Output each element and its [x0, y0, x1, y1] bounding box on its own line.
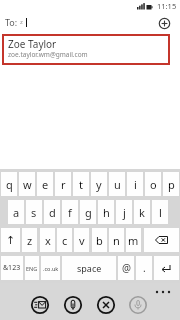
staticText: .co.uk: [43, 265, 59, 272]
button[interactable]: .co.uk: [41, 256, 60, 280]
staticText: o: [150, 177, 157, 192]
button[interactable]: space: [62, 256, 116, 280]
button[interactable]: v: [74, 228, 89, 252]
staticText: h: [103, 205, 110, 220]
button[interactable]: g: [80, 200, 96, 224]
staticText: n: [113, 233, 120, 248]
staticText: d: [49, 205, 56, 220]
staticText: z: [27, 233, 33, 248]
button[interactable]: w: [19, 172, 35, 196]
staticText: ENG: [26, 265, 38, 272]
button[interactable]: &123: [1, 256, 23, 280]
button[interactable]: m: [126, 228, 141, 252]
button[interactable]: p: [163, 172, 179, 196]
button[interactable]: [129, 296, 147, 314]
button[interactable]: [64, 296, 82, 314]
staticText: s: [31, 205, 37, 220]
button[interactable]: b: [92, 228, 107, 252]
button[interactable]: .: [136, 256, 152, 280]
staticText: i: [134, 177, 137, 192]
staticText: x: [45, 233, 51, 248]
button[interactable]: To:: [5, 15, 23, 29]
staticText: @: [122, 261, 131, 275]
button[interactable]: [31, 296, 49, 314]
staticText: j: [123, 205, 126, 220]
staticText: q: [6, 177, 13, 192]
staticText: f: [68, 205, 72, 220]
button[interactable]: ↑: [1, 228, 20, 252]
button[interactable]: [144, 228, 179, 252]
button[interactable]: q: [1, 172, 17, 196]
button[interactable]: @: [118, 256, 134, 280]
button[interactable]: u: [109, 172, 125, 196]
staticText: r: [61, 177, 66, 192]
button[interactable]: n: [109, 228, 124, 252]
button[interactable]: j: [116, 200, 132, 224]
button[interactable]: l: [152, 200, 168, 224]
button[interactable]: d: [44, 200, 60, 224]
staticText: g: [85, 205, 92, 220]
staticText: b: [96, 233, 103, 248]
staticText: space: [77, 262, 102, 274]
button[interactable]: o: [145, 172, 161, 196]
button[interactable]: ENG: [25, 256, 39, 280]
button[interactable]: c: [57, 228, 72, 252]
staticText: &123: [3, 263, 21, 273]
button[interactable]: x: [40, 228, 55, 252]
staticText: k: [139, 205, 145, 220]
staticText: .: [143, 261, 146, 275]
button[interactable]: i: [127, 172, 143, 196]
staticText: u: [114, 177, 121, 192]
button[interactable]: Zoe Taylor: [2, 34, 170, 65]
staticText: To:: [5, 16, 20, 28]
button[interactable]: [154, 256, 179, 280]
staticText: v: [79, 233, 85, 248]
staticText: t: [79, 177, 83, 192]
staticText: l: [159, 205, 162, 220]
button[interactable]: z: [22, 228, 37, 252]
staticText: ↑: [6, 234, 16, 247]
staticText: y: [96, 177, 102, 192]
staticText: e: [42, 177, 49, 192]
staticText: a: [13, 205, 20, 220]
staticText: zoe.taylor.wm@gmail.com: [8, 50, 88, 59]
button[interactable]: k: [134, 200, 150, 224]
staticText: z: [20, 18, 23, 26]
button[interactable]: s: [26, 200, 42, 224]
staticText: m: [128, 233, 139, 248]
button[interactable]: y: [91, 172, 107, 196]
staticText: 11:15: [157, 1, 177, 11]
button[interactable]: [97, 296, 115, 314]
staticText: Zoe Taylor: [8, 37, 57, 51]
staticText: c: [62, 233, 68, 248]
button[interactable]: e: [37, 172, 53, 196]
staticText: w: [23, 177, 32, 192]
staticText: p: [168, 177, 175, 192]
button[interactable]: a: [8, 200, 24, 224]
button[interactable]: t: [73, 172, 89, 196]
button[interactable]: [158, 17, 171, 30]
button[interactable]: h: [98, 200, 114, 224]
button[interactable]: r: [55, 172, 71, 196]
button[interactable]: f: [62, 200, 78, 224]
